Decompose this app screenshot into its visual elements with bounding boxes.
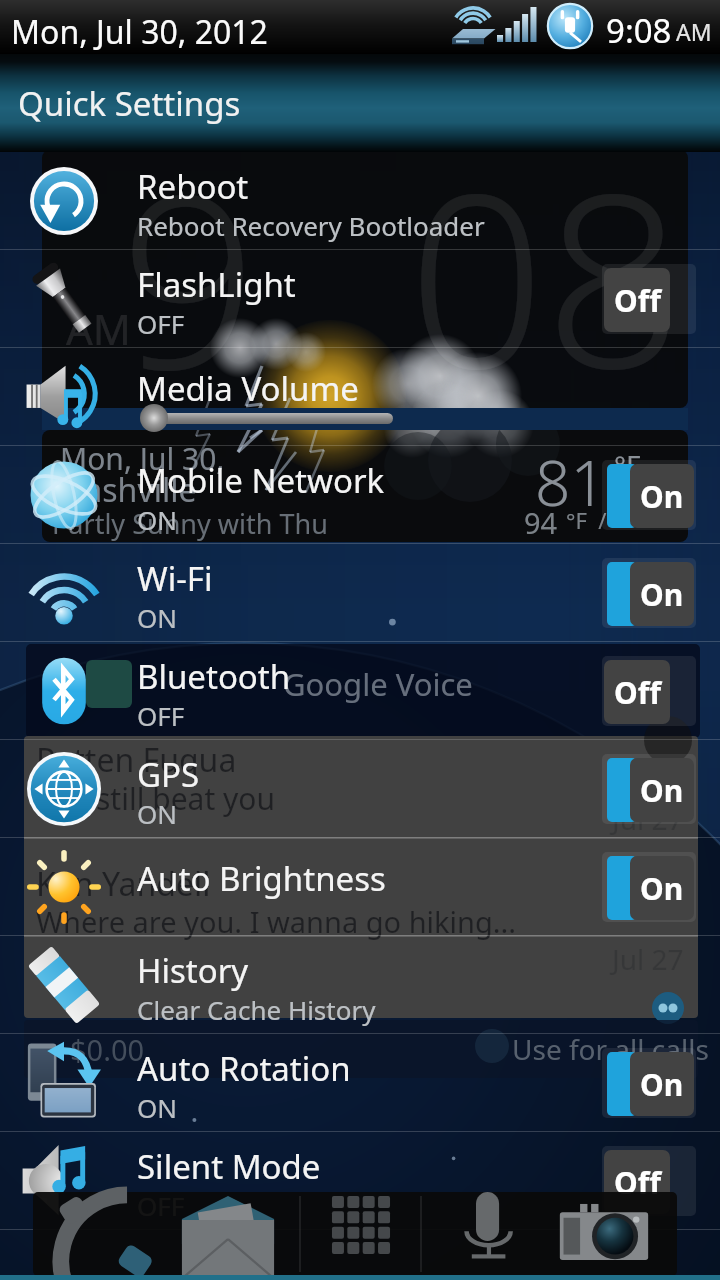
button[interactable]: Switch on (602, 753, 696, 825)
staticText: Quick Settings (18, 81, 241, 126)
button[interactable]: Silent Mode (0, 1132, 720, 1230)
staticText: Silent Mode (137, 1144, 321, 1189)
staticText: FlashLight (137, 262, 296, 307)
button[interactable]: Switch on (602, 459, 696, 531)
staticText: Google Voice (283, 663, 473, 705)
staticText: 9 (120, 111, 258, 438)
button[interactable]: Auto Rotation (0, 1034, 720, 1132)
button[interactable]: Bluetooth (0, 642, 720, 740)
staticText: AM (676, 16, 712, 47)
button[interactable]: Mobile Network (0, 446, 720, 544)
staticText: Use for all calls (512, 1030, 709, 1068)
staticText: On (640, 574, 684, 615)
staticText: Clear Cache History (137, 992, 376, 1027)
button[interactable]: Auto Brightness (0, 838, 720, 936)
staticText: ON (137, 1090, 178, 1125)
button[interactable]: Media Volume (0, 348, 720, 446)
staticText: Partly Sunny with Thu (52, 505, 328, 542)
staticText: Bluetooth (137, 654, 291, 699)
staticText: Jul 27 (612, 800, 684, 838)
staticText: Off (614, 1162, 661, 1203)
button[interactable]: Voice search (455, 1192, 525, 1262)
staticText: Jul 27 (612, 940, 684, 978)
button[interactable]: Wi-Fi (0, 544, 720, 642)
staticText: On (640, 476, 684, 517)
button[interactable]: Apps (331, 1195, 391, 1255)
staticText: Auto Brightness (137, 856, 386, 901)
staticText: OFF (137, 698, 185, 733)
button[interactable]: FlashLight (0, 250, 720, 348)
staticText: Off (614, 280, 661, 321)
staticText: ON (137, 502, 178, 537)
button[interactable]: Switch off (602, 655, 696, 727)
staticText: ON (137, 796, 178, 831)
button[interactable] (137, 403, 393, 433)
staticText: ON (137, 600, 178, 635)
button[interactable]: Switch on (602, 1047, 696, 1119)
staticText: Auto Rotation (137, 1046, 351, 1091)
staticText: On (640, 1064, 684, 1105)
button[interactable]: Switch off (602, 1145, 696, 1217)
staticText: °F / (566, 505, 607, 535)
staticText: Patten Fuqua (36, 738, 237, 782)
staticText: On (640, 770, 684, 811)
button[interactable]: Switch on (602, 557, 696, 629)
button[interactable]: Camera (558, 1192, 650, 1280)
staticText: $0.00 (70, 1030, 145, 1069)
staticText: 08 (408, 111, 683, 438)
staticText: Off (614, 672, 661, 713)
staticText: 81 (535, 440, 606, 524)
staticText: Mon, Jul 30, 2012 (11, 10, 268, 54)
staticText: OFF (137, 306, 185, 341)
staticText: Media Volume (137, 366, 359, 411)
button[interactable]: Switch off (602, 263, 696, 335)
button[interactable]: Reboot (0, 152, 720, 250)
staticText: 94 (524, 503, 558, 542)
button[interactable]: Phone (56, 1190, 154, 1280)
staticText: Reboot Recovery Bootloader (137, 208, 485, 243)
staticText: °F (614, 446, 641, 484)
button[interactable]: Switch on (602, 851, 696, 923)
staticText: Wi-Fi (137, 556, 213, 601)
staticText: still beat you (96, 778, 276, 819)
staticText: History (137, 948, 249, 993)
button[interactable]: GPS (0, 740, 720, 838)
staticText: On (640, 868, 684, 909)
staticText: OFF (137, 1188, 185, 1223)
staticText: Mobile Network (137, 458, 385, 503)
staticText: AM (66, 300, 131, 357)
staticText: GPS (137, 752, 200, 797)
staticText: Mon, Jul 30, (60, 438, 225, 479)
staticText: Where are you. I wanna go hiking... (36, 902, 517, 941)
staticText: Reboot (137, 164, 249, 209)
staticText: 9:08 (606, 8, 672, 53)
staticText: Nashville (60, 468, 197, 512)
staticText: Ken Yandell (36, 862, 211, 906)
button[interactable]: Messaging (180, 1196, 276, 1280)
button[interactable]: History (0, 936, 720, 1034)
